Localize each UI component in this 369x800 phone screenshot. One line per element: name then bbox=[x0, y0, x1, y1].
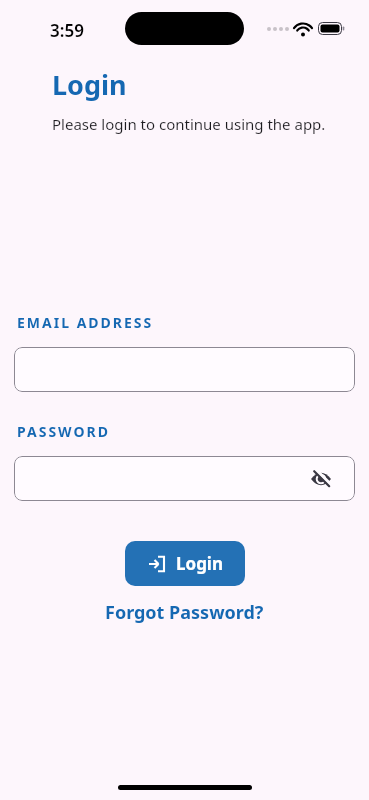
button[interactable] bbox=[14, 347, 355, 392]
button[interactable]: Login bbox=[125, 541, 245, 586]
button[interactable]: Forgot Password? bbox=[105, 600, 264, 625]
staticText: Forgot Password? bbox=[105, 600, 264, 625]
staticText: EMAIL ADDRESS bbox=[17, 313, 154, 332]
staticText: 3:59 bbox=[50, 19, 84, 42]
staticText: Please login to continue using the app. bbox=[52, 114, 326, 134]
staticText: Login bbox=[176, 552, 224, 575]
button[interactable] bbox=[309, 467, 333, 491]
button[interactable] bbox=[14, 456, 355, 501]
staticText: Login bbox=[52, 66, 127, 103]
staticText: PASSWORD bbox=[17, 422, 111, 441]
